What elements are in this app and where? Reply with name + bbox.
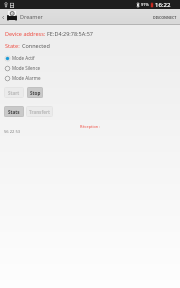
staticText: 91% <box>141 2 149 7</box>
staticText: Device address: <box>5 30 47 37</box>
button[interactable]: Mode Actif <box>0 53 180 63</box>
button[interactable]: Navigate up <box>0 9 43 25</box>
other: Navigate up <box>1 15 5 20</box>
staticText: FE:D4:29:78:5A:57 <box>47 30 93 37</box>
button[interactable]: Mode Silence <box>0 63 180 73</box>
staticText: Stats <box>8 109 20 115</box>
staticText: State: <box>5 42 22 49</box>
staticText: Stop <box>30 90 41 96</box>
button[interactable]: Stop <box>27 87 43 98</box>
staticText: Dreamer <box>20 13 43 20</box>
staticText: DISCONNECT <box>153 15 177 20</box>
staticText: Mode Alarme <box>12 75 41 81</box>
staticText: Réception : <box>80 124 101 129</box>
button[interactable]: Mode Alarme <box>0 73 180 83</box>
staticText: Transfert <box>29 109 50 115</box>
button[interactable]: DISCONNECT <box>150 9 180 25</box>
staticText: Mode Silence <box>12 65 41 71</box>
staticText: Start <box>8 90 20 96</box>
button[interactable]: Transfert <box>26 106 53 117</box>
staticText: 16:22 <box>155 1 171 9</box>
staticText: 56 22 53 <box>4 129 21 135</box>
button[interactable]: Start <box>4 87 24 98</box>
button[interactable]: Stats <box>4 106 24 117</box>
staticText: Mode Actif <box>12 55 35 61</box>
staticText: Connected <box>22 42 50 49</box>
